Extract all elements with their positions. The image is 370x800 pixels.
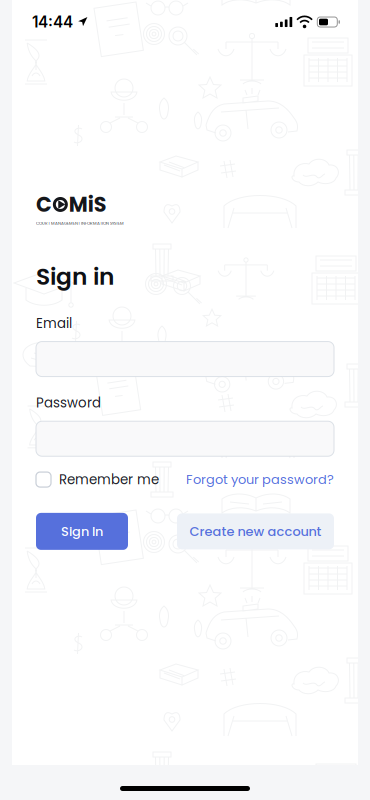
- staticText: Email: [36, 314, 72, 333]
- button[interactable]: Remember me: [36, 470, 159, 489]
- staticText: MiS: [69, 190, 107, 219]
- staticText: Forgot your password?: [186, 470, 334, 489]
- staticText: Password: [36, 394, 101, 412]
- staticText: 14:44: [32, 13, 73, 31]
- staticText: Sign in: [36, 260, 114, 293]
- button[interactable]: Sign In: [36, 513, 128, 550]
- staticText: C: [36, 190, 52, 219]
- staticText: Remember me: [59, 470, 159, 489]
- staticText: Create new account: [189, 522, 321, 540]
- staticText: Sign In: [61, 522, 103, 540]
- button[interactable]: Forgot your password?: [186, 470, 334, 489]
- button[interactable]: Create new account: [177, 513, 334, 549]
- staticText: COURT MANAGEMENT INFORMATION SYSTEM: [36, 220, 124, 226]
